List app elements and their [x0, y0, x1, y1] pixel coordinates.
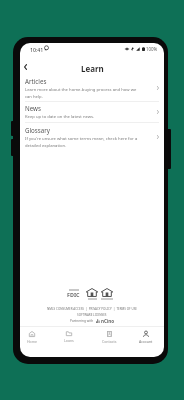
button[interactable]: Contacts [92, 328, 126, 350]
staticText: 10:41 [30, 46, 44, 53]
staticText: NMLS CONSUMER ACCESS | PRIVACY POLICY | … [47, 307, 137, 311]
button[interactable]: Account [129, 328, 163, 350]
staticText: Articles [25, 77, 47, 85]
staticText: Learn more about the home-buying process… [25, 87, 137, 99]
staticText: If you're unsure what some terms mean, c… [25, 136, 138, 148]
staticText: Learn [81, 63, 104, 74]
staticText: Loans [64, 338, 74, 343]
staticText: Glossary [25, 126, 50, 134]
button[interactable]: Back [20, 59, 32, 74]
staticText: News [25, 104, 41, 112]
staticText: SOFTWARE LICENSES [77, 313, 107, 317]
button[interactable]: Home [20, 328, 49, 350]
staticText: FDIC [67, 291, 80, 298]
button[interactable]: Loans [52, 328, 86, 350]
staticText: nCino [101, 318, 115, 324]
button[interactable]: News [20, 102, 164, 122]
staticText: Contacts [102, 339, 117, 344]
staticText: 100% [146, 46, 158, 52]
button[interactable]: Articles [20, 75, 164, 101]
staticText: Home [27, 339, 37, 344]
button[interactable]: Glossary [20, 123, 164, 151]
staticText: Keep up to date on the latest news. [25, 114, 95, 120]
staticText: Account [139, 339, 153, 344]
staticText: Partnering with [70, 319, 94, 323]
